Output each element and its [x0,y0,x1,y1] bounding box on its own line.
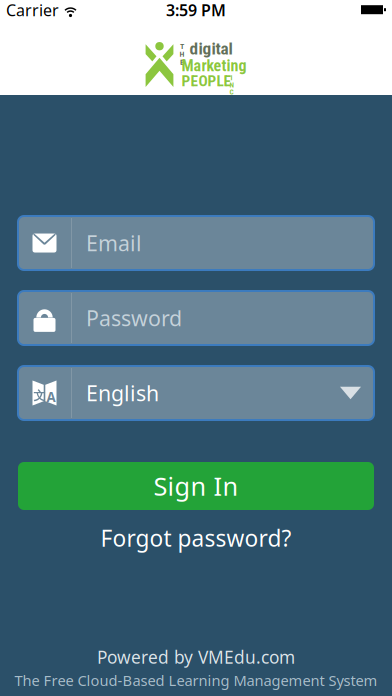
staticText: Forgot password? [100,523,291,553]
staticText: Password [86,304,182,332]
staticText: English [86,379,159,407]
staticText: I [230,73,232,82]
button[interactable]: Password [18,291,374,345]
button[interactable]: 文 [18,366,374,420]
staticText: 文 [33,388,45,403]
staticText: E [180,57,184,67]
staticText: A [46,388,55,406]
staticText: C [229,88,233,96]
staticText: Marketing [181,56,246,75]
staticText: The Free Cloud-Based Learning Management… [14,670,377,690]
staticText: Powered by VMEdu.com [97,645,295,668]
staticText: Email [86,229,142,257]
button[interactable]: Sign In [18,462,374,510]
button[interactable]: Forgot password? [0,526,392,550]
staticText: 3:59 PM [166,0,226,21]
staticText: PEOPLE [181,72,231,90]
staticText: T [180,41,184,51]
staticText: Carrier [6,0,59,21]
staticText: Sign In [153,469,238,503]
staticText: H [179,49,184,59]
button[interactable]: Email [18,216,374,270]
staticText: digital [189,38,232,59]
staticText: N [229,81,233,89]
